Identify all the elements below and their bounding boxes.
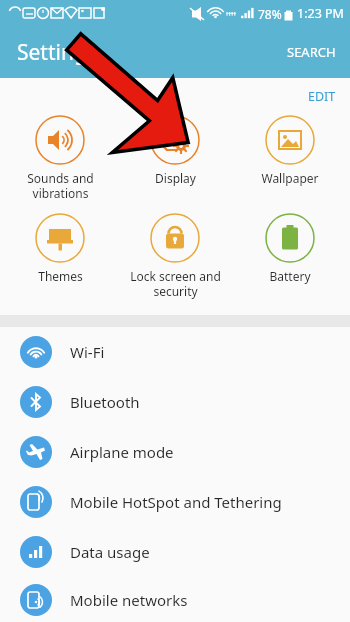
staticText: Data usage — [70, 542, 150, 562]
staticText: Display — [155, 170, 196, 186]
staticText: Sounds and vibrations — [27, 170, 94, 201]
button[interactable]: Wi-Fi — [0, 327, 350, 377]
button[interactable]: Sounds and vibrations — [5, 113, 115, 203]
button[interactable]: Display — [120, 113, 230, 188]
staticText: SEARCH — [287, 43, 336, 61]
staticText: Wi-Fi — [70, 342, 105, 362]
staticText: Themes — [38, 268, 83, 284]
staticText: 78% — [258, 6, 282, 22]
staticText: 1:23 PM — [297, 5, 344, 22]
button[interactable]: Bluetooth — [0, 377, 350, 427]
button[interactable]: Wallpaper — [235, 113, 345, 188]
staticText: Battery — [269, 268, 311, 284]
staticText: Bluetooth — [70, 392, 140, 412]
staticText: Settings — [17, 38, 97, 67]
button[interactable]: SEARCH — [273, 33, 350, 71]
staticText: Lock screen and security — [130, 268, 221, 299]
button[interactable]: Airplane mode — [0, 427, 350, 477]
button[interactable]: EDIT — [294, 84, 350, 109]
button[interactable]: Themes — [5, 211, 115, 286]
button[interactable]: Data usage — [0, 527, 350, 577]
staticText: Mobile networks — [70, 590, 188, 610]
button[interactable]: Mobile networks — [0, 577, 350, 622]
button[interactable]: Mobile HotSpot and Tethering — [0, 477, 350, 527]
button[interactable]: Battery — [235, 211, 345, 286]
staticText: EDIT — [308, 88, 336, 105]
button[interactable]: Lock screen and security — [120, 211, 230, 301]
staticText: Mobile HotSpot and Tethering — [70, 492, 282, 512]
staticText: Airplane mode — [70, 442, 174, 462]
staticText: Wallpaper — [261, 170, 319, 186]
